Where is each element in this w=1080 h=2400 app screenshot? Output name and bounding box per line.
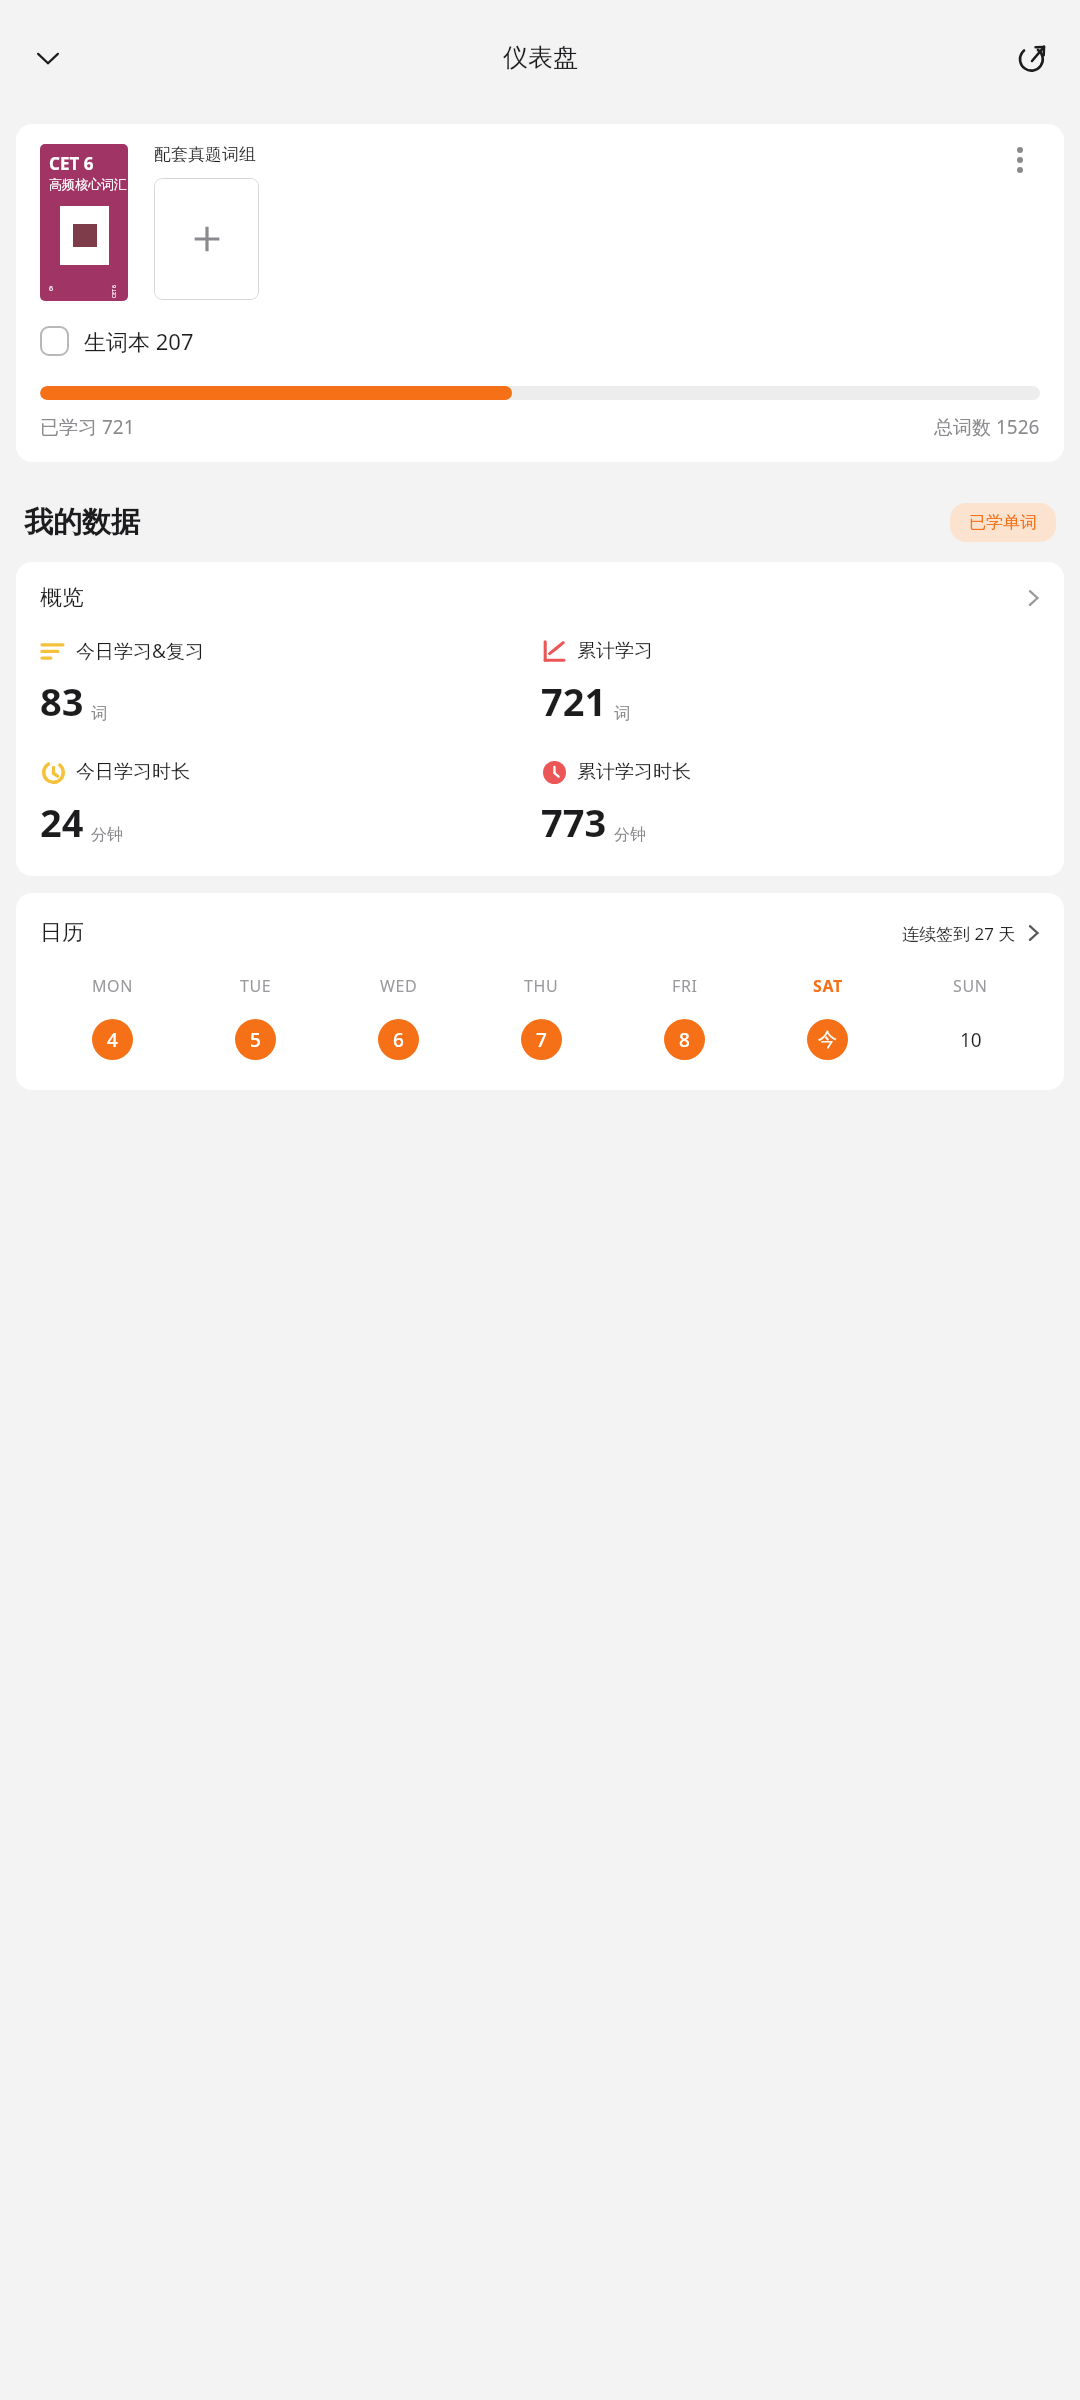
staticText: 773: [541, 796, 607, 848]
staticText: 已学习 721: [40, 414, 135, 440]
staticText: 我的数据: [24, 504, 140, 541]
staticText: 6: [393, 1027, 404, 1053]
staticText: 7: [536, 1027, 547, 1053]
staticText: FRI: [672, 975, 698, 997]
staticText: 今: [818, 1028, 837, 1052]
staticText: 8: [679, 1027, 690, 1053]
button[interactable]: More options: [1000, 140, 1040, 180]
button[interactable]: 累计学习时长: [541, 759, 1042, 848]
staticText: THU: [524, 975, 559, 997]
staticText: 6: [49, 284, 54, 294]
staticText: 24: [40, 796, 84, 848]
button[interactable]: CET 6: [40, 144, 128, 301]
button[interactable]: 6: [378, 1019, 419, 1060]
staticText: 分钟: [614, 825, 646, 845]
staticText: 今日学习时长: [76, 760, 190, 784]
staticText: SAT: [813, 975, 843, 997]
button[interactable]: Collapse: [24, 34, 72, 82]
staticText: 累计学习: [577, 639, 653, 663]
staticText: WED: [380, 975, 418, 997]
staticText: 连续签到 27 天: [902, 922, 1016, 945]
button[interactable]: 已学单词: [950, 503, 1056, 542]
button[interactable]: 生词本 207: [40, 326, 1040, 356]
button[interactable]: 今日学习&复习: [40, 638, 541, 727]
button[interactable]: Share: [1008, 34, 1056, 82]
staticText: 总词数 1526: [934, 414, 1040, 440]
staticText: CET 6: [111, 285, 118, 298]
button[interactable]: 今: [807, 1019, 848, 1060]
staticText: 83: [40, 675, 84, 727]
staticText: 生词本 207: [84, 326, 194, 356]
staticText: 721: [541, 675, 607, 727]
button[interactable]: Add word list: [154, 178, 259, 300]
button[interactable]: 10: [950, 1019, 991, 1060]
staticText: 配套真题词组: [154, 144, 256, 165]
button[interactable]: 8: [664, 1019, 705, 1060]
staticText: TUE: [240, 975, 272, 997]
button[interactable]: CET 6: [16, 124, 1064, 462]
staticText: 10: [960, 1027, 982, 1053]
staticText: 概览: [40, 584, 84, 612]
staticText: 日历: [40, 919, 84, 947]
button[interactable]: 4: [92, 1019, 133, 1060]
button[interactable]: 今日学习时长: [40, 759, 541, 848]
staticText: 4: [107, 1027, 118, 1053]
staticText: 词: [614, 704, 630, 724]
button[interactable]: 日历: [40, 919, 1042, 947]
staticText: 词: [91, 704, 107, 724]
staticText: 累计学习时长: [577, 760, 691, 784]
staticText: 高频核心词汇: [49, 176, 127, 192]
staticText: 分钟: [91, 825, 123, 845]
staticText: SUN: [953, 975, 988, 997]
button[interactable]: 7: [521, 1019, 562, 1060]
staticText: CET 6: [49, 152, 94, 175]
button[interactable]: 5: [235, 1019, 276, 1060]
staticText: MON: [92, 975, 133, 997]
staticText: 仪表盘: [503, 42, 578, 73]
button[interactable]: 累计学习: [541, 638, 1042, 727]
staticText: 5: [250, 1027, 261, 1053]
button[interactable]: 概览: [40, 584, 1042, 612]
staticText: 已学单词: [969, 512, 1037, 533]
staticText: 今日学习&复习: [76, 638, 204, 664]
